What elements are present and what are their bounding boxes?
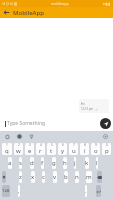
staticText: j — [74, 159, 76, 167]
button[interactable]: b — [64, 171, 68, 183]
staticText: 9 — [95, 143, 97, 147]
staticText: g — [52, 159, 56, 167]
staticText: 1 — [6, 143, 8, 147]
staticText: n — [75, 173, 79, 181]
staticText: 7 — [73, 143, 75, 147]
button[interactable]: 2 — [14, 143, 23, 155]
button[interactable]: l — [96, 157, 98, 169]
button[interactable]: Type Something — [5, 118, 98, 129]
staticText: a — [8, 159, 12, 167]
staticText: 2 — [18, 143, 20, 147]
staticText: k — [85, 159, 89, 167]
staticText: mobileapp — [51, 1, 69, 6]
button[interactable]: Emoji — [15, 132, 24, 141]
button[interactable]: g — [52, 157, 56, 169]
button[interactable]: Settings — [101, 132, 110, 141]
button[interactable]: 12# — [2, 185, 10, 197]
staticText: d — [30, 159, 34, 167]
staticText: w — [16, 147, 21, 155]
staticText: l — [96, 159, 98, 167]
button[interactable]: x — [31, 171, 35, 183]
staticText: Type Something — [7, 120, 46, 127]
button[interactable]: m — [86, 171, 92, 183]
staticText: 0 — [106, 143, 108, 147]
staticText: 3 — [29, 143, 31, 147]
button[interactable]: , — [18, 185, 20, 197]
staticText: x — [31, 173, 35, 181]
button[interactable]: 7 — [69, 143, 78, 155]
button[interactable]: 5 — [47, 143, 56, 155]
staticText: q — [5, 147, 9, 155]
button[interactable]: z — [19, 171, 22, 183]
button[interactable]: a — [8, 157, 12, 169]
button[interactable]: j — [74, 157, 76, 169]
staticText: 6 — [62, 143, 64, 147]
button[interactable]: s — [19, 157, 22, 169]
staticText: 5 — [51, 143, 53, 147]
button[interactable]: 3 — [25, 143, 34, 155]
button[interactable]: . — [85, 185, 87, 197]
staticText: f — [41, 159, 44, 167]
staticText: ▾ ▮ ▮ — [103, 1, 111, 6]
button[interactable] — [97, 171, 102, 183]
button[interactable]: c — [42, 171, 45, 183]
staticText: t — [50, 147, 53, 155]
button[interactable]: 9 — [91, 143, 100, 155]
staticText: •ıl ⬡ ✕ ▤ — [2, 1, 18, 6]
button[interactable]: f — [41, 157, 44, 169]
button[interactable] — [96, 185, 101, 197]
staticText: . — [85, 188, 87, 195]
button[interactable]: 4 — [36, 143, 45, 155]
button[interactable]: v — [53, 171, 57, 183]
staticText: , — [18, 188, 20, 195]
button[interactable]: 1 — [2, 143, 12, 155]
staticText: c — [42, 173, 45, 181]
staticText: MobileApp — [13, 9, 44, 17]
button[interactable]: n — [75, 171, 79, 183]
staticText: m — [86, 173, 92, 181]
button[interactable]: Send — [100, 118, 111, 129]
staticText: 8 — [84, 143, 86, 147]
staticText: p — [105, 147, 109, 155]
staticText: hi — [81, 101, 85, 106]
staticText: i — [84, 147, 86, 155]
button[interactable]: k — [85, 157, 89, 169]
staticText: r — [39, 147, 42, 155]
staticText: u — [72, 147, 76, 155]
staticText: s — [19, 159, 22, 167]
button[interactable]: 8 — [80, 143, 89, 155]
button[interactable]: Clipboard — [3, 132, 12, 141]
staticText: y — [61, 147, 65, 155]
staticText: h — [63, 159, 67, 167]
staticText: o — [94, 147, 98, 155]
button[interactable]: d — [30, 157, 34, 169]
staticText: 12# — [2, 188, 10, 194]
button[interactable] — [2, 171, 6, 183]
button[interactable]: Stickers — [27, 132, 36, 141]
staticText: 12:13 pm — [81, 107, 94, 111]
button[interactable]: Back — [0, 7, 13, 18]
button[interactable]: h — [63, 157, 67, 169]
button[interactable]: 0 — [102, 143, 111, 155]
staticText: b — [64, 173, 68, 181]
staticText: v — [53, 173, 57, 181]
button[interactable]: 6 — [58, 143, 67, 155]
staticText: z — [19, 173, 22, 181]
button[interactable]: hi — [81, 101, 107, 111]
staticText: 4 — [40, 143, 42, 147]
staticText: e — [28, 147, 32, 155]
